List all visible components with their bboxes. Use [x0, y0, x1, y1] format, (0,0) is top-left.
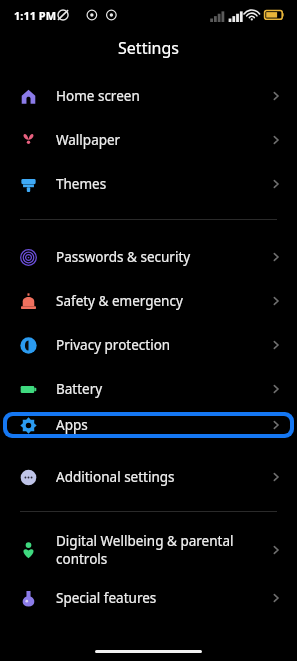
button[interactable]: Battery — [0, 367, 297, 411]
button[interactable]: Wallpaper — [0, 118, 297, 162]
button[interactable]: Apps — [7, 416, 290, 434]
button[interactable]: Passwords & security — [0, 235, 297, 279]
staticText: controls — [56, 550, 108, 568]
staticText: Wallpaper — [56, 131, 121, 149]
staticText: Home screen — [56, 87, 140, 105]
staticText: Settings — [118, 37, 179, 59]
button[interactable]: Privacy protection — [0, 323, 297, 367]
button[interactable]: Special features — [0, 576, 297, 620]
staticText: Passwords & security — [56, 248, 191, 266]
button[interactable]: Digital Wellbeing & parental — [0, 524, 297, 576]
staticText: Battery — [56, 380, 103, 398]
button[interactable]: Safety & emergency — [0, 279, 297, 323]
button[interactable]: Themes — [0, 162, 297, 206]
staticText: Additional settings — [56, 468, 175, 486]
button[interactable]: Home screen — [0, 74, 297, 118]
staticText: Privacy protection — [56, 336, 171, 354]
staticText: Apps — [56, 416, 88, 434]
button[interactable]: Additional settings — [0, 455, 297, 499]
staticText: 1:11 PM — [14, 8, 57, 23]
staticText: Digital Wellbeing & parental — [56, 532, 234, 550]
staticText: Themes — [56, 175, 107, 193]
staticText: Safety & emergency — [56, 292, 183, 310]
staticText: Special features — [56, 589, 157, 607]
